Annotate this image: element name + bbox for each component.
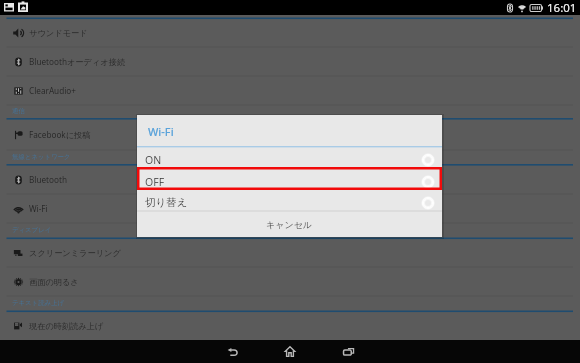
button[interactable]: 現在の時刻読み上げ (0, 316, 580, 335)
staticText: Wi-Fi (148, 124, 174, 139)
staticText: Bluetooth (29, 174, 67, 185)
staticText: OFF (145, 175, 165, 189)
staticText: 現在の時刻読み上げ (29, 321, 104, 331)
staticText: ディスプレイ (12, 226, 52, 234)
staticText: Wi-Fi (29, 203, 48, 214)
staticText: 無線とネットワーク (12, 153, 71, 161)
staticText: 画面の明るさ (29, 277, 79, 287)
button[interactable]: Wi-Fi (0, 199, 580, 218)
button[interactable]: Bluetoothオーディオ接続 (0, 52, 580, 71)
button[interactable]: ClearAudio+ (0, 81, 580, 100)
button[interactable]: スクリーンミラーリング (0, 243, 580, 262)
button[interactable]: 画面の明るさ (0, 272, 580, 291)
staticText: Facebookに投稿 (29, 129, 91, 140)
button[interactable]: キャンセル (137, 212, 442, 237)
button[interactable]: Recent apps (330, 340, 366, 363)
staticText: スクリーンミラーリング (29, 248, 121, 258)
staticText: 16:01 (547, 0, 577, 15)
button[interactable]: ON (137, 149, 442, 170)
button[interactable]: Back (214, 340, 250, 363)
staticText: 切り替え (145, 196, 188, 209)
staticText: ON (145, 153, 162, 167)
button[interactable]: Bluetooth (0, 170, 580, 189)
staticText: ClearAudio+ (29, 85, 76, 96)
staticText: 通信 (12, 107, 25, 115)
button[interactable]: サウンドモード (0, 23, 580, 42)
button[interactable]: Facebookに投稿 (0, 125, 580, 144)
staticText: テキスト読み上げ (12, 299, 65, 307)
staticText: サウンドモード (29, 28, 88, 38)
button[interactable]: OFF (137, 171, 442, 192)
staticText: キャンセル (266, 219, 313, 230)
button[interactable]: Home (272, 340, 308, 363)
button[interactable]: 切り替え (137, 192, 442, 213)
staticText: Bluetoothオーディオ接続 (29, 56, 126, 67)
